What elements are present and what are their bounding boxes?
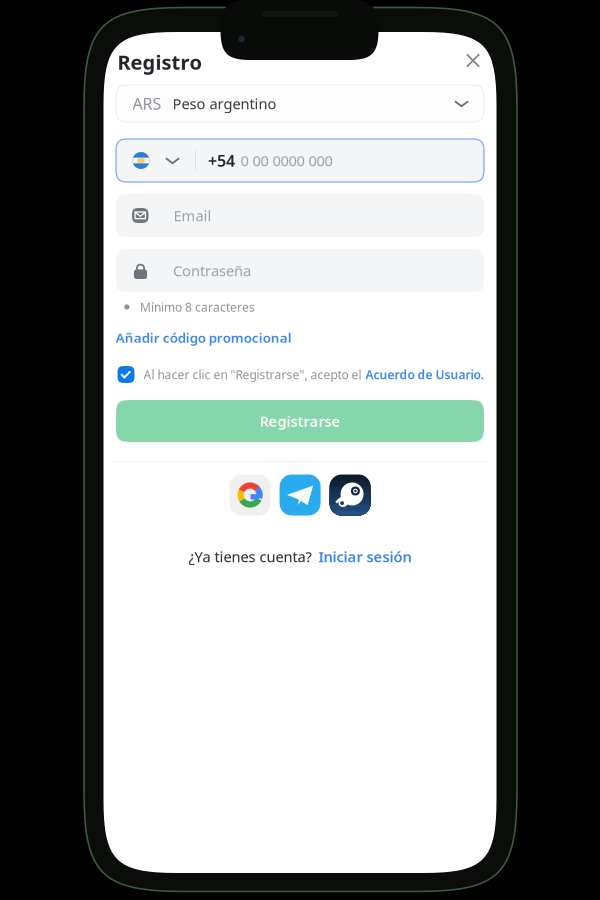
button[interactable]: Cerrar	[454, 42, 491, 79]
staticText: Registro	[117, 49, 202, 75]
button[interactable]: Continuar con Telegram	[280, 474, 321, 515]
staticText: +54	[208, 150, 235, 171]
button[interactable]: Iniciar sesión	[311, 547, 411, 566]
staticText: Registrarse	[259, 411, 340, 431]
staticText: Iniciar sesión	[318, 547, 411, 566]
button[interactable]: Acepto el acuerdo de usuario	[117, 365, 134, 384]
staticText: Contraseña	[173, 261, 251, 280]
staticText: Añadir código promocional	[116, 329, 292, 346]
staticText: ARS	[132, 93, 161, 114]
button[interactable]: Registrarse	[116, 400, 484, 442]
button[interactable]: ARS	[116, 85, 484, 122]
button[interactable]: Continuar con Steam	[330, 474, 371, 515]
staticText: Al hacer clic en "Registrarse", acepto e…	[143, 366, 361, 382]
staticText: Peso argentino	[172, 94, 276, 113]
button[interactable]: Continuar con Google	[230, 474, 271, 515]
button[interactable]: Añadir código promocional	[116, 328, 366, 347]
staticText: Mínimo 8 caracteres	[140, 299, 255, 315]
staticText: Email	[173, 206, 211, 225]
staticText: ¿Ya tienes cuenta?	[188, 547, 311, 566]
staticText: 0 00 0000 000	[240, 151, 332, 170]
button[interactable]: Acuerdo de Usuario.	[361, 366, 483, 382]
staticText: Acuerdo de Usuario.	[365, 366, 483, 382]
